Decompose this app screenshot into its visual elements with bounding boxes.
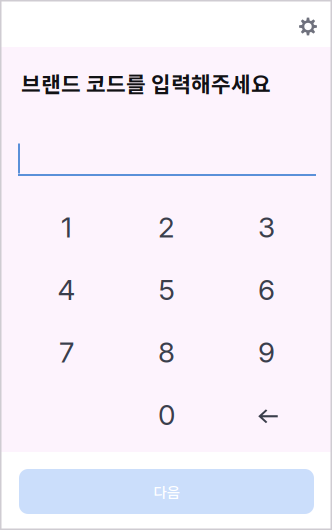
button[interactable]: 7 <box>16 321 116 383</box>
button[interactable]: 2 <box>116 196 216 258</box>
button[interactable]: 3 <box>216 196 316 258</box>
staticText: 브랜드 코드를 입력해주세요 <box>21 68 271 98</box>
button[interactable]: 9 <box>216 321 316 383</box>
button[interactable]: 6 <box>216 258 316 321</box>
staticText: 다음 <box>153 481 179 502</box>
button[interactable]: 다음 <box>19 469 314 514</box>
staticText: 9 <box>258 335 275 369</box>
staticText: 3 <box>258 210 275 244</box>
button[interactable]: 1 <box>16 196 116 258</box>
staticText: 4 <box>57 273 75 307</box>
staticText: 7 <box>59 335 74 369</box>
button[interactable]: 5 <box>116 258 216 321</box>
staticText: 1 <box>61 210 72 244</box>
staticText: 6 <box>258 273 275 307</box>
staticText: 8 <box>158 335 175 369</box>
button[interactable]: 4 <box>16 258 116 321</box>
button[interactable]: 8 <box>116 321 216 383</box>
staticText: 0 <box>158 398 175 432</box>
button[interactable]: 0 <box>116 383 216 446</box>
staticText: 5 <box>158 273 174 307</box>
staticText: 2 <box>158 210 175 244</box>
button[interactable]: Delete <box>216 383 316 446</box>
button[interactable]: Settings <box>291 9 325 43</box>
